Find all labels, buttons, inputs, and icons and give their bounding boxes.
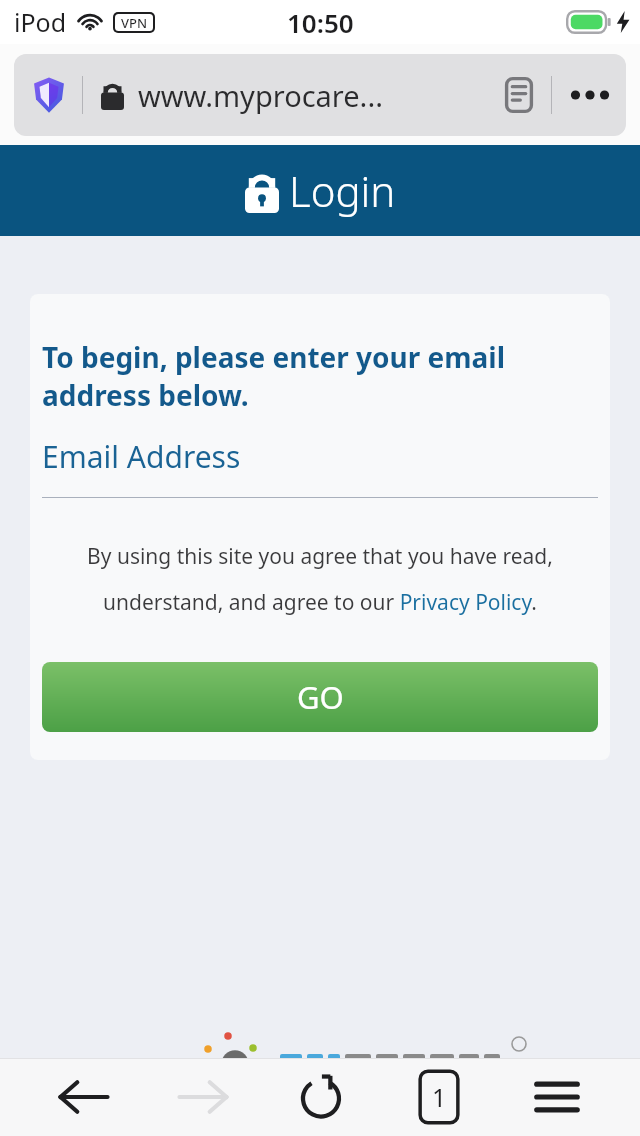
staticText: Login bbox=[289, 162, 396, 219]
button[interactable]: Email Address bbox=[42, 436, 598, 498]
other: Reader mode bbox=[505, 77, 533, 113]
staticText: 1 bbox=[432, 1080, 447, 1114]
other: More options bbox=[568, 85, 612, 105]
button[interactable]: Menu bbox=[498, 1058, 616, 1136]
staticText: By using this site you agree that you ha… bbox=[64, 542, 576, 616]
staticText: Email Address bbox=[42, 436, 241, 477]
staticText: To begin, please enter your email addres… bbox=[42, 338, 506, 414]
button[interactable]: Brave shields bbox=[14, 54, 626, 136]
button[interactable]: Back bbox=[24, 1058, 143, 1136]
staticText: iPod bbox=[14, 5, 67, 39]
button[interactable]: GO bbox=[42, 662, 598, 732]
button[interactable]: Tabs bbox=[380, 1058, 498, 1136]
staticText: GO bbox=[297, 676, 344, 718]
other: Brave shields bbox=[32, 76, 66, 114]
staticText: VPN bbox=[121, 14, 148, 31]
button[interactable]: Forward bbox=[143, 1058, 262, 1136]
staticText: 10:50 bbox=[287, 5, 354, 40]
staticText: www.myprocare... bbox=[138, 76, 383, 115]
button[interactable]: Reload bbox=[262, 1058, 380, 1136]
